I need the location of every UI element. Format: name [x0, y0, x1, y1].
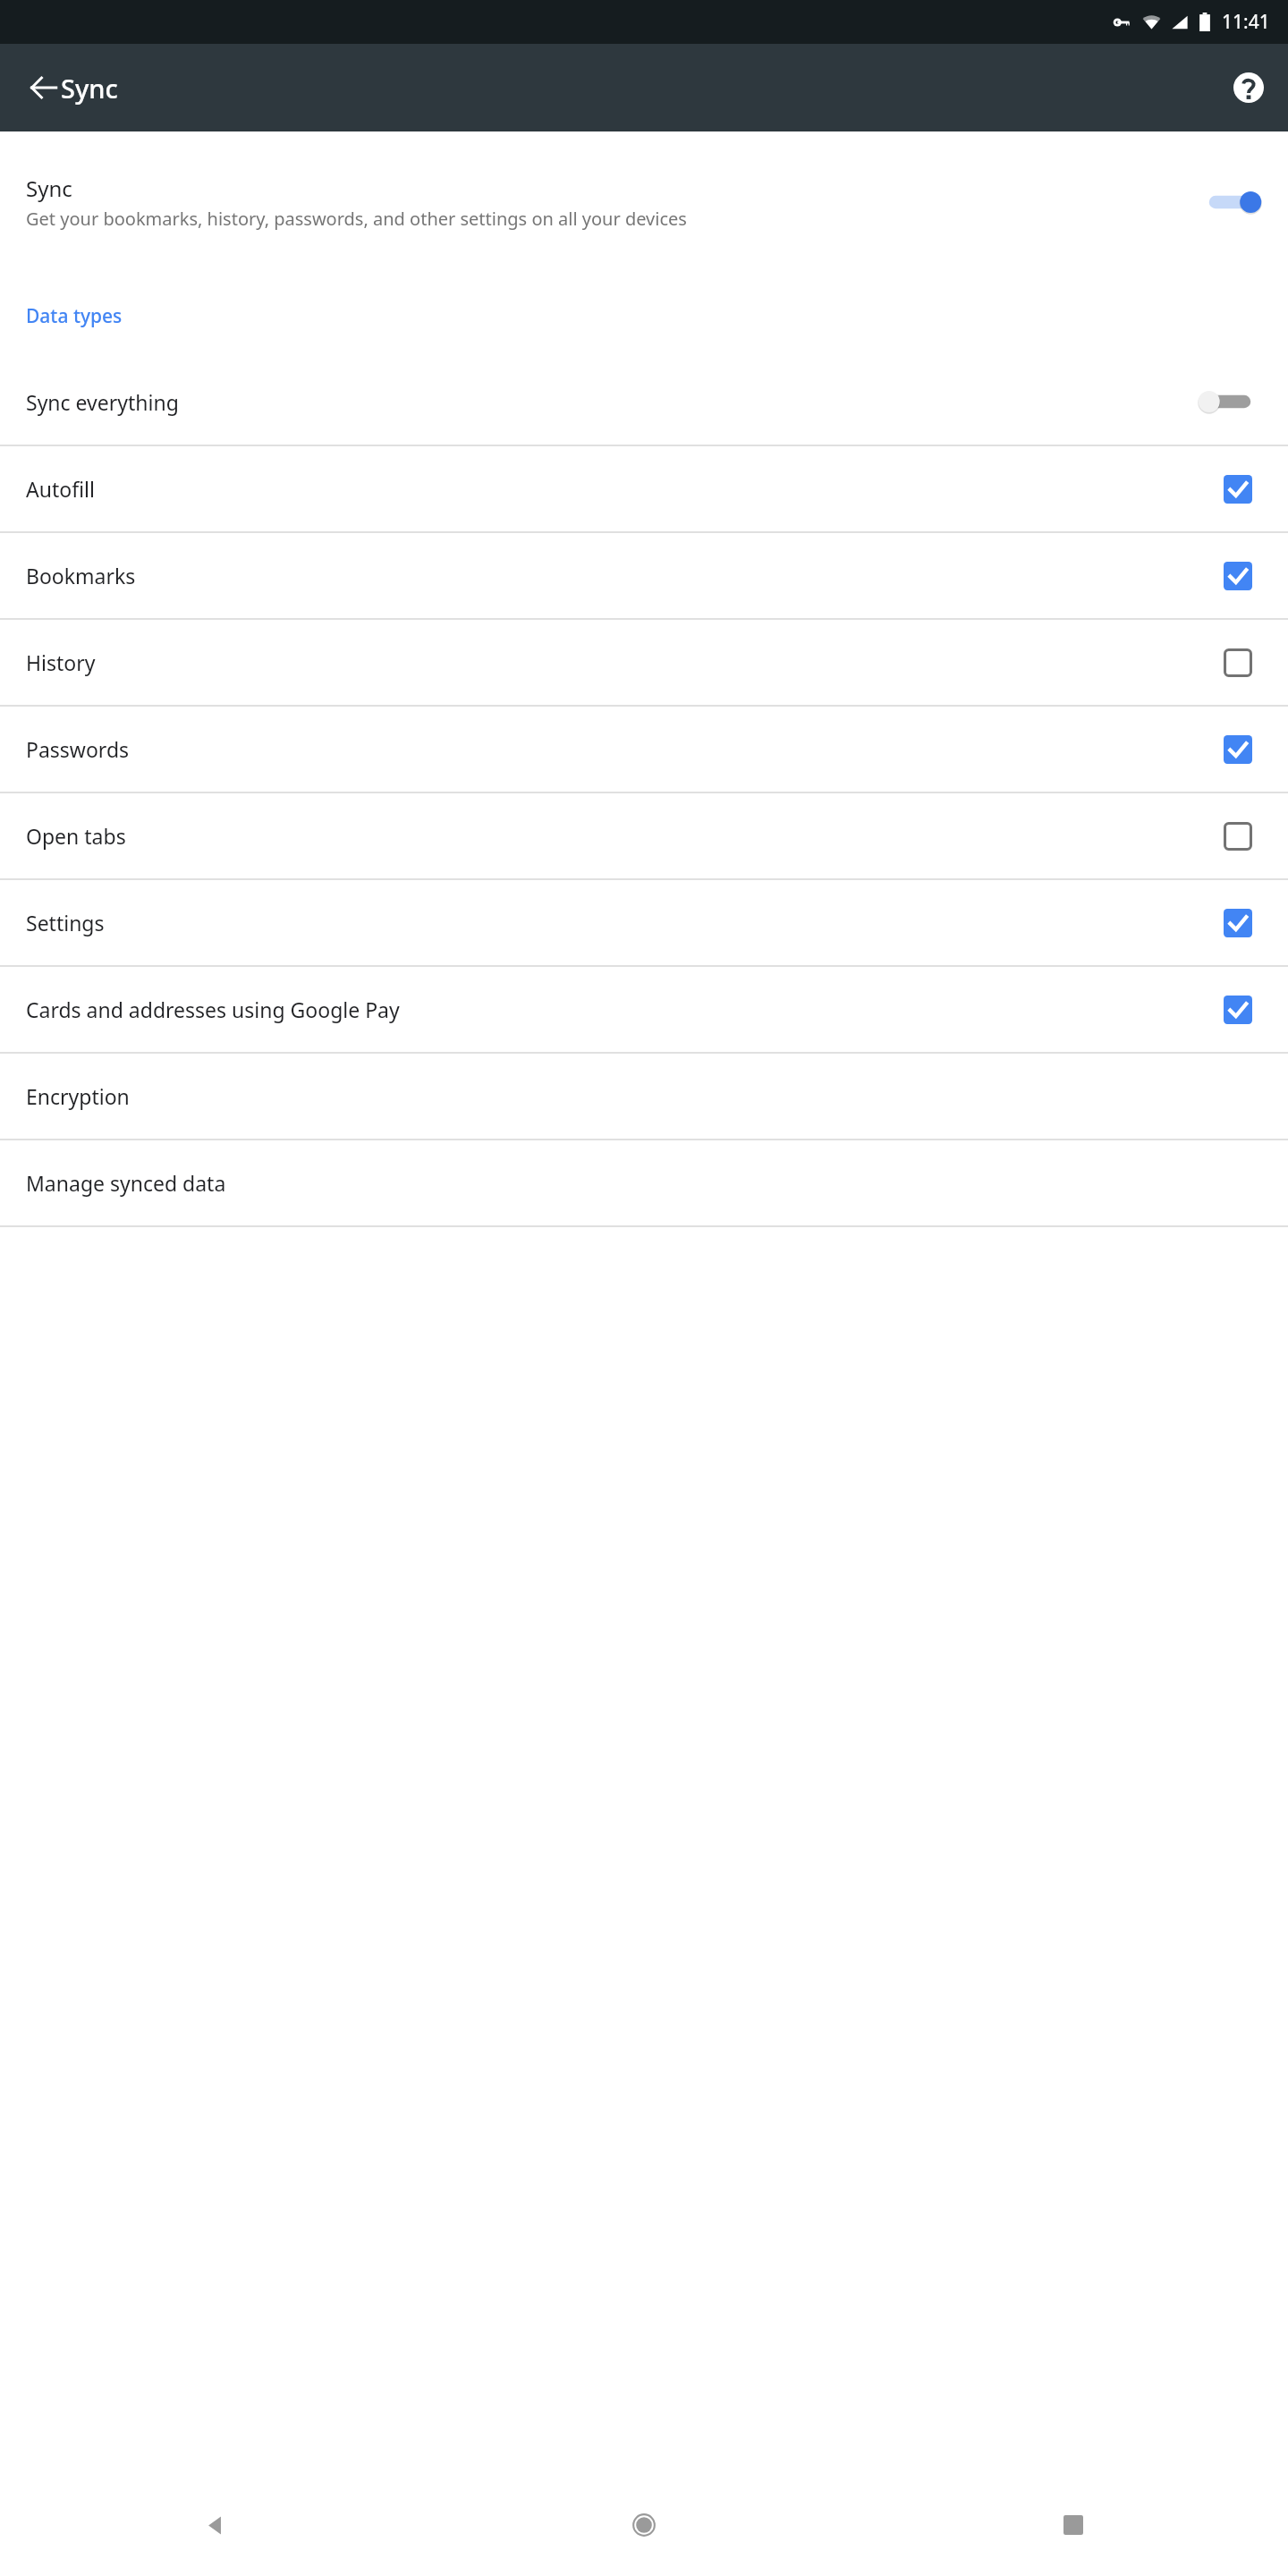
button[interactable]: Recent apps: [1046, 2498, 1100, 2552]
staticText: Manage synced data: [26, 1169, 226, 1197]
staticText: Open tabs: [26, 822, 1209, 850]
staticText: Passwords: [26, 735, 1209, 763]
button[interactable]: Home: [617, 2498, 671, 2552]
staticText: History: [26, 648, 1209, 676]
button[interactable]: Sync: [0, 131, 1288, 273]
staticText: Bookmarks: [26, 562, 1209, 589]
staticText: 11:41: [1222, 9, 1270, 35]
button[interactable]: History: [0, 620, 1288, 705]
staticText: Sync: [26, 174, 72, 203]
staticText: Cards and addresses using Google Pay: [26, 996, 1209, 1023]
staticText: Autofill: [26, 475, 1209, 503]
button[interactable]: Passwords: [0, 707, 1288, 792]
staticText: Sync: [61, 71, 118, 106]
button[interactable]: Encryption: [0, 1054, 1288, 1139]
button[interactable]: Sync everything: [0, 359, 1288, 445]
button[interactable]: Settings: [0, 880, 1288, 965]
staticText: Encryption: [26, 1082, 130, 1110]
staticText: Settings: [26, 909, 1209, 936]
staticText: Data types: [26, 303, 123, 329]
button[interactable]: Back: [188, 2498, 241, 2552]
button[interactable]: Open tabs: [0, 793, 1288, 878]
staticText: Get your bookmarks, history, passwords, …: [26, 207, 687, 231]
staticText: Sync everything: [26, 388, 1184, 416]
button[interactable]: Help: [1220, 59, 1277, 116]
button[interactable]: Cards and addresses using Google Pay: [0, 967, 1288, 1052]
button[interactable]: Autofill: [0, 446, 1288, 531]
button[interactable]: Manage synced data: [0, 1140, 1288, 1225]
button[interactable]: Back: [15, 59, 72, 116]
button[interactable]: Bookmarks: [0, 533, 1288, 618]
